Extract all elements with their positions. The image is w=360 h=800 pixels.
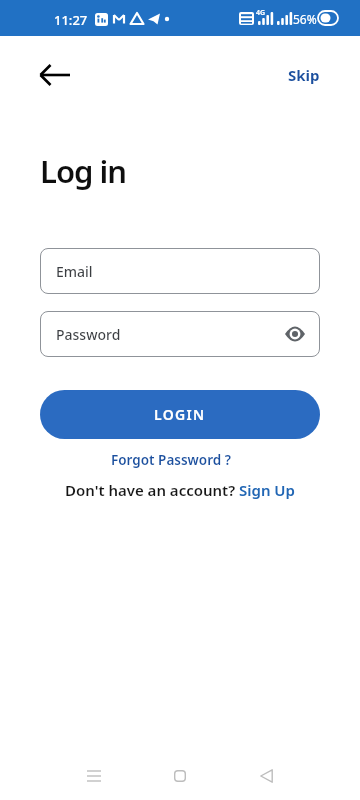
staticText: 4G (256, 8, 266, 18)
staticText: Email (56, 262, 93, 281)
button[interactable]: Don't have an account? Sign Up (63, 478, 297, 502)
staticText: Forgot Password ? (111, 451, 231, 469)
button[interactable]: Email (40, 248, 320, 294)
staticText: LOGIN (154, 405, 206, 424)
button[interactable]: Password (40, 311, 320, 357)
staticText: Password (56, 325, 121, 344)
button[interactable]: Skip (280, 60, 328, 90)
staticText: 56% (293, 11, 317, 27)
button[interactable] (137, 752, 223, 800)
button[interactable]: Forgot Password ? (107, 447, 235, 473)
staticText: Skip (288, 65, 320, 85)
staticText: 11:27 (54, 11, 88, 29)
staticText: Don't have an account? Sign Up (65, 480, 295, 500)
button[interactable] (51, 752, 137, 800)
button[interactable] (35, 57, 75, 93)
button[interactable]: LOGIN (40, 390, 320, 439)
staticText: Log in (40, 150, 127, 192)
button[interactable] (223, 752, 309, 800)
